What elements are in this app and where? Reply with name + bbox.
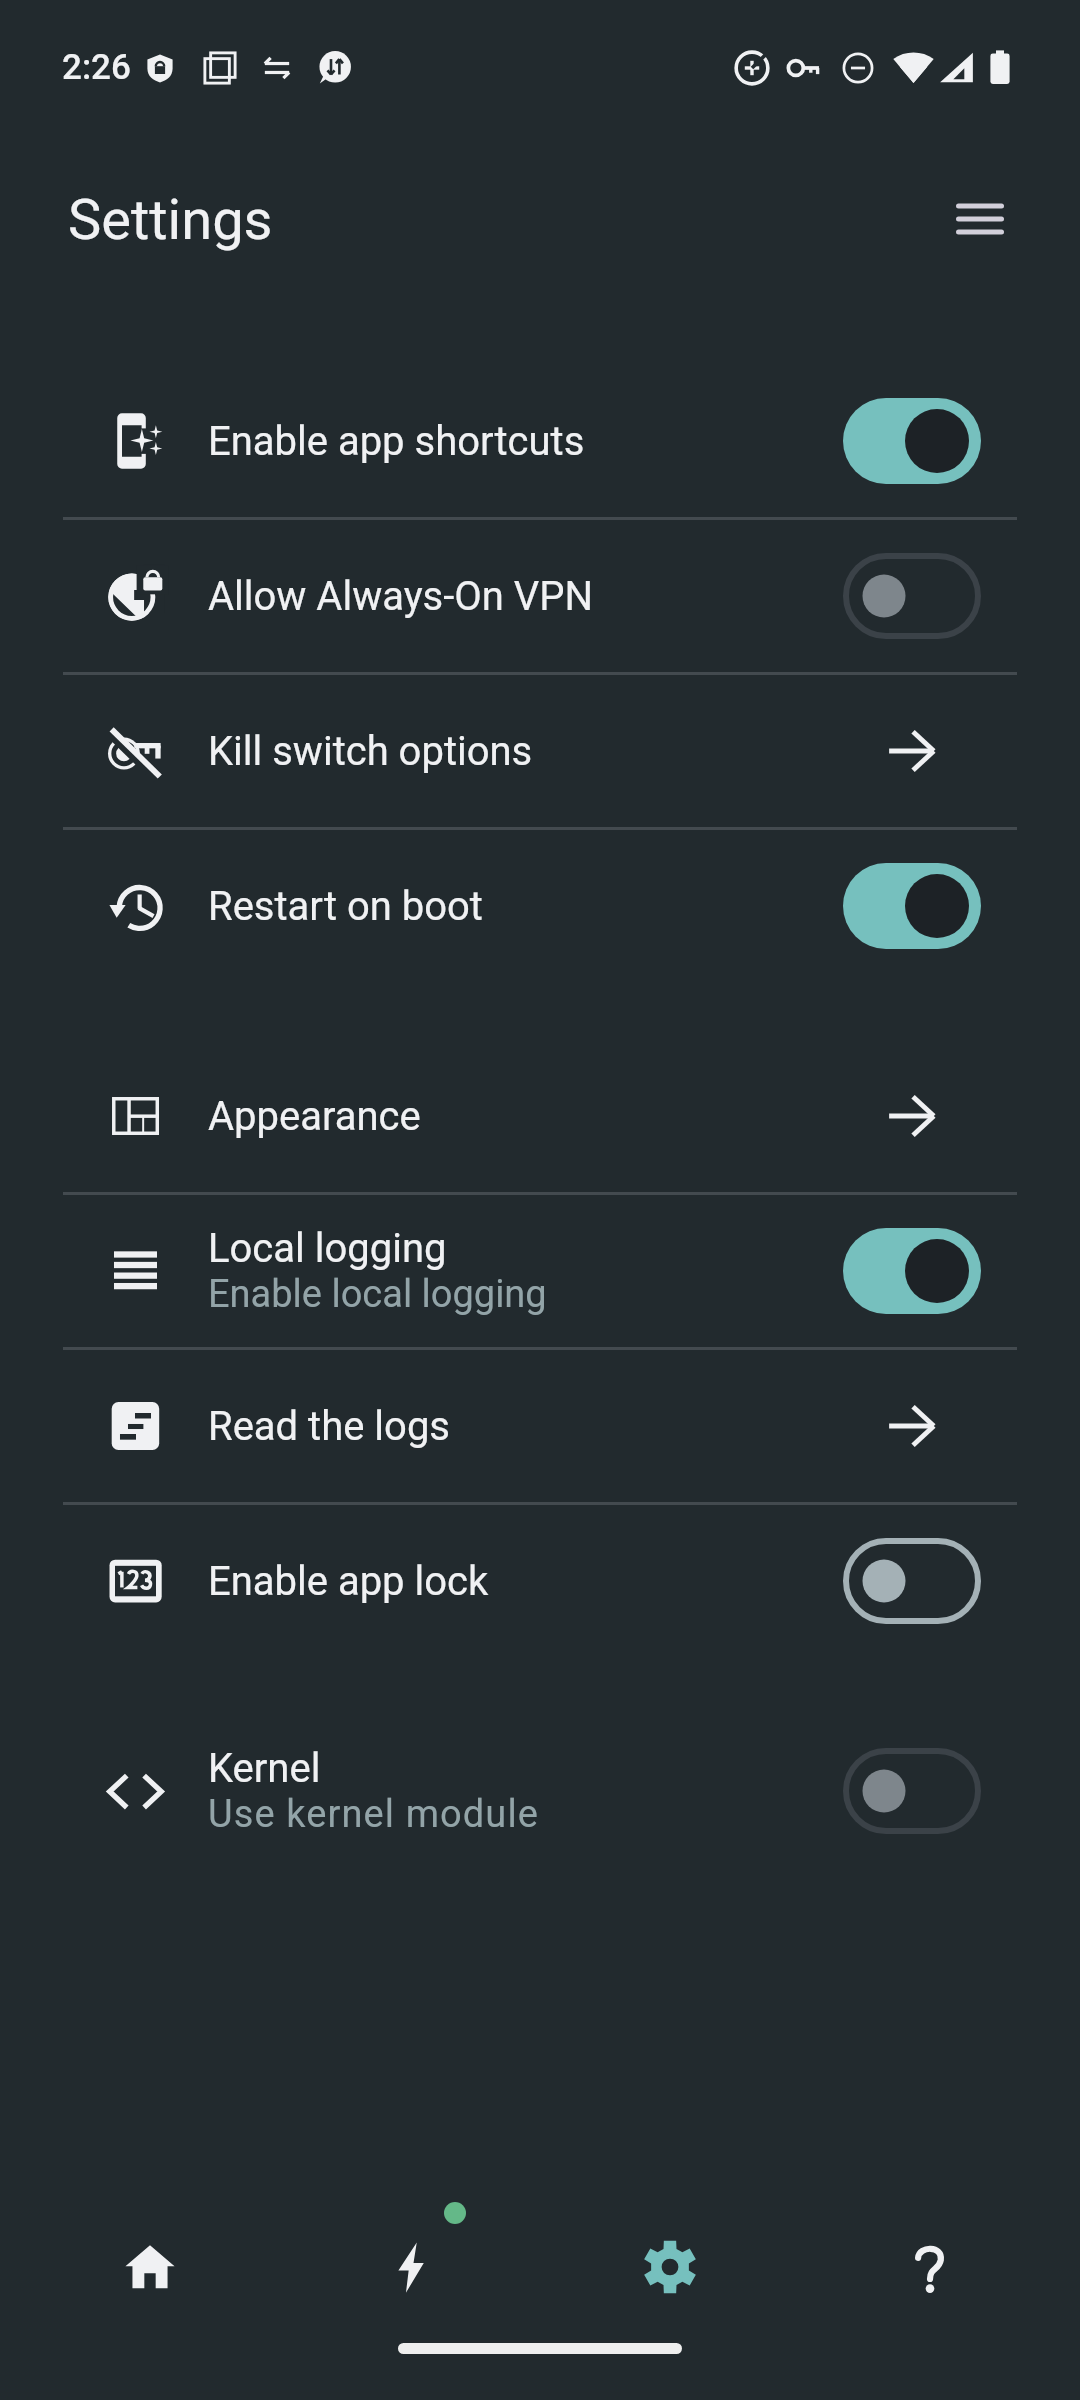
button[interactable]: Help — [800, 2170, 1060, 2340]
staticText: Enable local logging — [208, 1272, 547, 1317]
staticText: 2:26 — [62, 47, 131, 88]
button[interactable]: Enable app lock — [0, 1505, 1080, 1657]
staticText: Enable app lock — [208, 1558, 489, 1605]
button[interactable]: Allow Always-On VPN — [0, 520, 1080, 672]
button[interactable]: Menu — [932, 171, 1028, 267]
button[interactable]: Appearance — [0, 1040, 1080, 1192]
staticText: Allow Always-On VPN — [208, 573, 594, 620]
staticText: Settings — [68, 187, 273, 253]
staticText: Appearance — [208, 1093, 421, 1140]
button[interactable]: Home — [20, 2170, 280, 2340]
staticText: Enable app shortcuts — [208, 418, 585, 465]
button[interactable]: Read the logs — [0, 1350, 1080, 1502]
staticText: Local logging — [208, 1225, 447, 1272]
button[interactable]: Kill switch options — [0, 675, 1080, 827]
staticText: Use kernel module — [208, 1792, 540, 1837]
button[interactable]: Connect — [280, 2170, 540, 2340]
staticText: Read the logs — [208, 1403, 450, 1450]
button[interactable]: Local logging — [0, 1195, 1080, 1347]
button[interactable]: Kernel — [0, 1715, 1080, 1867]
staticText: Kernel — [208, 1745, 321, 1792]
button[interactable]: Enable app shortcuts — [0, 365, 1080, 517]
button[interactable]: Restart on boot — [0, 830, 1080, 982]
staticText: Kill switch options — [208, 728, 533, 775]
staticText: Restart on boot — [208, 883, 483, 930]
button[interactable]: Settings — [540, 2170, 800, 2340]
